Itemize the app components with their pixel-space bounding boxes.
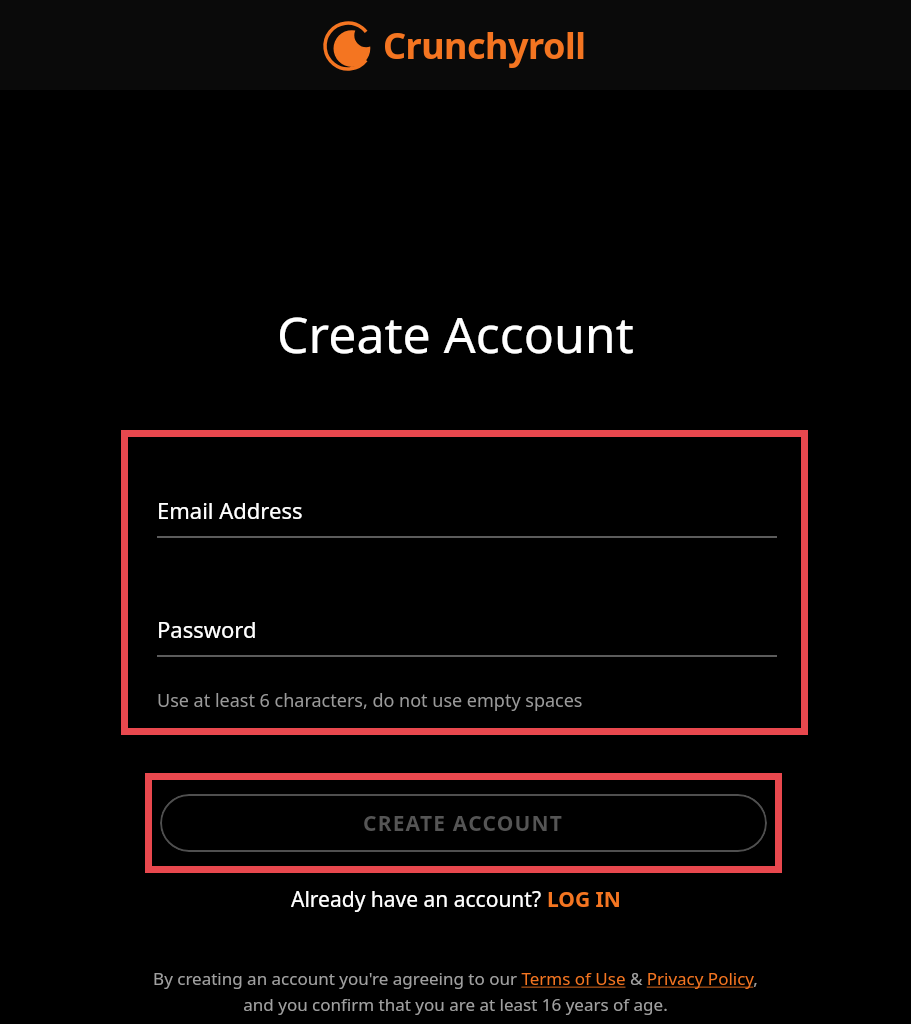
staticText: LOG IN	[547, 885, 621, 914]
staticText: Create Account	[277, 300, 634, 368]
staticText: Already have an account?	[291, 885, 547, 914]
button[interactable]: By creating an account you're agreeing t…	[80, 967, 831, 1016]
staticText: CREATE ACCOUNT	[363, 809, 564, 838]
staticText: Use at least 6 characters, do not use em…	[157, 688, 583, 713]
button[interactable]: CREATE ACCOUNT	[160, 794, 767, 852]
button[interactable]: Password	[157, 614, 777, 657]
button[interactable]: Already have an account?	[291, 885, 621, 914]
staticText: Email Address	[157, 495, 303, 525]
button[interactable]: Email Address	[157, 495, 777, 538]
staticText: Crunchyroll	[383, 21, 586, 70]
staticText: By creating an account you're agreeing t…	[153, 967, 758, 1016]
staticText: Password	[157, 614, 257, 644]
